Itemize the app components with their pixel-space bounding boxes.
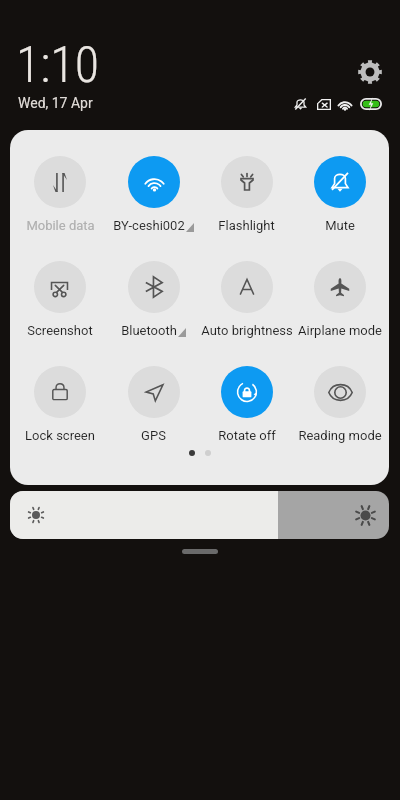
button[interactable]: Mute (293, 156, 386, 233)
button[interactable]: Settings (352, 54, 388, 90)
staticText: BY-ceshi002 (113, 218, 185, 233)
staticText: Mobile data (26, 218, 95, 233)
staticText: Flashlight (218, 218, 275, 233)
staticText: Rotate off (218, 428, 276, 443)
button[interactable]: Flashlight (200, 156, 293, 233)
button[interactable]: GPS (107, 366, 200, 443)
button[interactable]: Brightness (10, 491, 389, 539)
button[interactable]: Lock screen (13, 366, 107, 443)
staticText: Mute (325, 218, 355, 233)
staticText: GPS (141, 428, 166, 443)
staticText: Reading mode (298, 428, 382, 443)
button[interactable]: BY-ceshi002 (107, 156, 200, 233)
button[interactable]: Bluetooth (107, 261, 200, 338)
staticText: Auto brightness (201, 323, 293, 338)
button[interactable]: Airplane mode (293, 261, 386, 338)
staticText: Airplane mode (298, 323, 382, 338)
staticText: Screenshot (27, 323, 93, 338)
button[interactable]: Auto brightness (200, 261, 293, 338)
button[interactable]: Rotate off (200, 366, 293, 443)
staticText: Wed, 17 Apr (18, 95, 93, 111)
staticText: Lock screen (25, 428, 95, 443)
staticText: 1:10 (16, 36, 99, 95)
button[interactable]: Mobile data (13, 156, 107, 233)
button[interactable]: Reading mode (293, 366, 386, 443)
staticText: Bluetooth (121, 323, 177, 338)
button[interactable]: Screenshot (13, 261, 107, 338)
